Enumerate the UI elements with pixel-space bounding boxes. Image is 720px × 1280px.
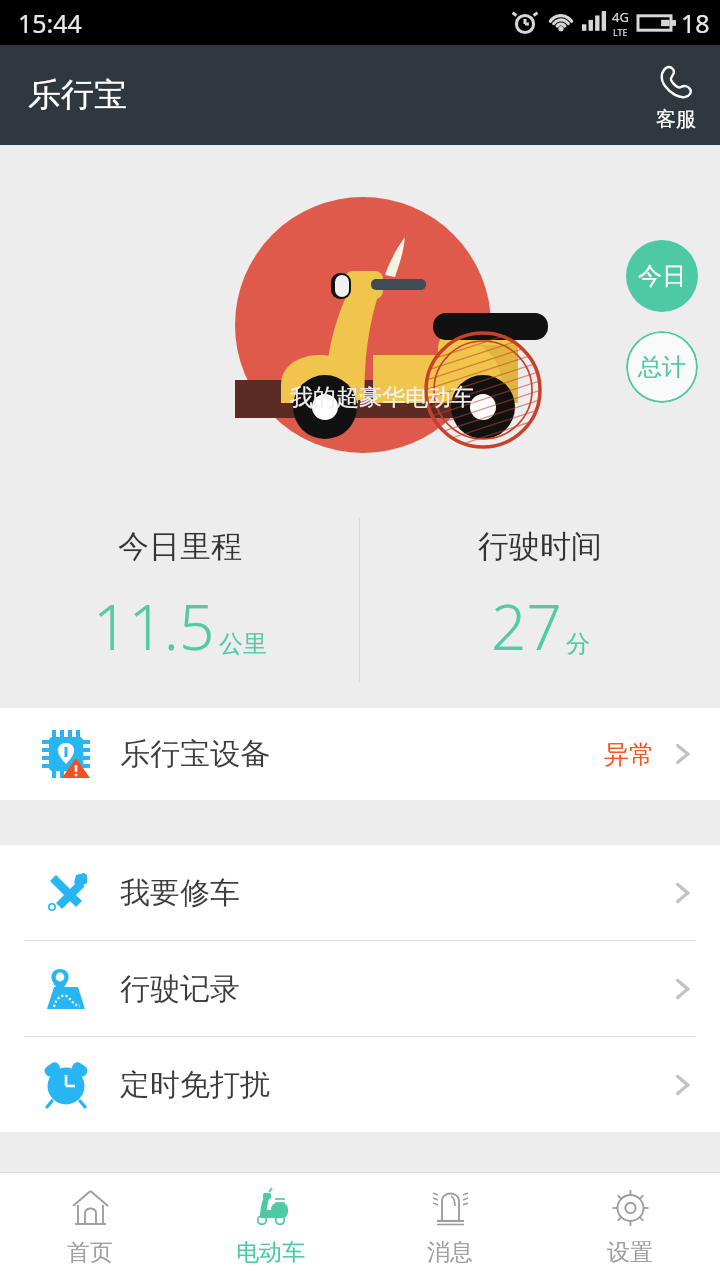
button[interactable]: 今日	[626, 240, 698, 312]
staticText: 18	[681, 6, 710, 40]
staticText: 客服	[656, 107, 696, 132]
staticText: 15:44	[18, 6, 82, 40]
staticText: 异常	[604, 739, 654, 770]
button[interactable]: 客服	[646, 57, 706, 134]
button[interactable]: 乐行宝设备	[0, 708, 720, 800]
staticText: 行驶记录	[120, 970, 240, 1008]
staticText: 电动车	[236, 1238, 305, 1267]
staticText: 分	[566, 629, 590, 659]
staticText: 设置	[607, 1238, 653, 1267]
staticText: 27	[491, 584, 562, 668]
staticText: 消息	[427, 1238, 473, 1267]
staticText: 公里	[219, 629, 267, 659]
staticText: 我的超豪华电动车	[290, 383, 474, 412]
staticText: 乐行宝设备	[120, 735, 270, 773]
staticText: 4G	[612, 8, 629, 26]
button[interactable]: 设置	[540, 1173, 720, 1280]
staticText: 今日里程	[118, 527, 242, 566]
staticText: 乐行宝	[28, 74, 127, 116]
button[interactable]: 行驶记录	[0, 941, 720, 1036]
staticText: 行驶时间	[478, 527, 602, 566]
staticText: 11.5	[93, 584, 215, 668]
staticText: 今日	[638, 261, 686, 291]
button[interactable]: 总计	[626, 331, 698, 403]
button[interactable]: 消息	[360, 1173, 540, 1280]
staticText: 定时免打扰	[120, 1066, 270, 1104]
button[interactable]: 定时免打扰	[0, 1037, 720, 1132]
staticText: 首页	[67, 1238, 113, 1267]
button[interactable]: 电动车	[180, 1173, 360, 1280]
button[interactable]: 我要修车	[0, 845, 720, 940]
staticText: 总计	[638, 352, 686, 382]
staticText: LTE	[613, 26, 628, 38]
staticText: 我要修车	[120, 874, 240, 912]
button[interactable]: 首页	[0, 1173, 180, 1280]
